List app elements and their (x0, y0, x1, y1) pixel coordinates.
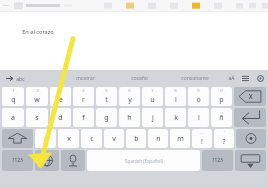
staticText: abc (16, 75, 25, 82)
staticText: r (82, 95, 85, 105)
button[interactable]: l (188, 108, 209, 127)
staticText: m (177, 134, 184, 144)
button[interactable]: b (126, 129, 146, 148)
button[interactable]: cosaño (112, 70, 167, 86)
button[interactable]: 0 (211, 87, 232, 106)
staticText: 6 (128, 88, 131, 94)
button[interactable]: Text size (225, 72, 237, 84)
button[interactable]: ?123 (2, 150, 33, 171)
staticText: 0 (220, 88, 223, 94)
staticText: d (58, 113, 63, 123)
button[interactable]: s (26, 108, 48, 127)
button[interactable]: ñ (211, 108, 232, 127)
staticText: cosaño (131, 75, 148, 82)
staticText: f (82, 113, 85, 123)
staticText: i (175, 95, 177, 105)
staticText: x (67, 134, 71, 144)
staticText: s (35, 113, 39, 123)
button[interactable]: 2 (26, 87, 48, 106)
button[interactable]: d (50, 108, 71, 127)
staticText: Spanish (Español) (125, 158, 163, 164)
button[interactable]: v (104, 129, 124, 148)
button[interactable]: Backspace (234, 87, 266, 106)
staticText: 8 (174, 88, 177, 94)
staticText: q (11, 95, 16, 105)
button[interactable]: consonante (167, 70, 222, 86)
button[interactable]: h (119, 108, 140, 127)
staticText: w (34, 95, 40, 105)
staticText: ? (222, 137, 226, 147)
staticText: ?123 (212, 157, 223, 164)
button[interactable]: m (170, 129, 190, 148)
button[interactable]: 9 (188, 87, 209, 106)
button[interactable]: k (165, 108, 186, 127)
staticText: ! (201, 137, 203, 147)
button[interactable]: g (96, 108, 117, 127)
button[interactable]: n (148, 129, 168, 148)
staticText: k (174, 113, 178, 123)
button[interactable]: 3 (50, 87, 71, 106)
staticText: l (198, 113, 200, 123)
button[interactable]: Spanish (Español) (87, 150, 200, 171)
button[interactable]: 7 (142, 87, 163, 106)
staticText: consonante (181, 75, 209, 82)
button[interactable]: abc (0, 70, 58, 86)
staticText: 2 (36, 88, 39, 94)
staticText: mostrar (76, 75, 95, 82)
button[interactable]: … (192, 129, 212, 148)
staticText: c (90, 134, 94, 144)
staticText: aA (228, 75, 235, 82)
staticText: … (200, 130, 204, 136)
staticText: y (128, 95, 132, 105)
button[interactable]: f (73, 108, 94, 127)
button[interactable]: z (35, 129, 56, 148)
staticText: u (150, 95, 155, 105)
button[interactable]: 6 (119, 87, 140, 106)
button[interactable]: Shift (2, 129, 33, 148)
staticText: a (11, 113, 15, 123)
button[interactable]: 5 (96, 87, 117, 106)
staticText: g (104, 113, 109, 123)
button[interactable]: mostrar (58, 70, 112, 86)
staticText: v (112, 134, 116, 144)
staticText: b (134, 134, 139, 144)
staticText: ñ (219, 113, 224, 123)
staticText: z (44, 134, 48, 144)
staticText: ' (224, 130, 225, 136)
staticText: 7 (151, 88, 154, 94)
staticText: e (59, 95, 63, 105)
button[interactable]: 8 (165, 87, 186, 106)
button[interactable]: a (2, 108, 24, 127)
button[interactable]: Enter (234, 108, 266, 127)
staticText: n (156, 134, 161, 144)
button[interactable]: 1 (2, 87, 24, 106)
button[interactable]: j (142, 108, 163, 127)
button[interactable]: Switch language (35, 150, 59, 171)
button[interactable]: ' (214, 129, 234, 148)
button[interactable]: Settings (254, 72, 266, 84)
staticText: En el corazo (22, 28, 54, 36)
staticText: 9 (197, 88, 200, 94)
button[interactable]: Emoji (236, 129, 266, 148)
staticText: o (196, 95, 201, 105)
button[interactable]: c (81, 129, 102, 148)
staticText: j (152, 113, 154, 123)
staticText: p (219, 95, 224, 105)
staticText: t (105, 95, 108, 105)
button[interactable]: Clipboard (239, 72, 251, 84)
button[interactable]: ?123 (202, 150, 233, 171)
button[interactable]: x (58, 129, 79, 148)
button[interactable]: 4 (73, 87, 94, 106)
staticText: 4 (82, 88, 85, 94)
button[interactable]: Voice input (61, 150, 85, 171)
staticText: h (127, 113, 132, 123)
staticText: 1 (12, 88, 15, 94)
staticText: ?123 (12, 157, 23, 164)
staticText: 3 (59, 88, 62, 94)
button[interactable]: Hide keyboard (235, 150, 266, 171)
staticText: 5 (105, 88, 108, 94)
